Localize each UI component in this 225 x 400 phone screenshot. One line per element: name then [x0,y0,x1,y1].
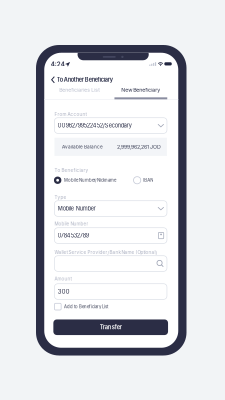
staticText: New Beneficiary [121,87,160,93]
staticText: To Beneficiary [54,167,88,173]
staticText: Amount [54,276,71,281]
staticText: Mobile Number [58,205,96,212]
staticText: Transfer [100,324,122,331]
staticText: 4:24 [51,60,65,68]
staticText: Add to Beneficiary List [64,304,108,309]
staticText: 00962799522452/Secondary [58,122,132,129]
button[interactable]: Transfer [53,319,168,335]
button[interactable]: Mobile Number/Nickname [54,176,120,184]
staticText: 300 [58,288,70,295]
button[interactable]: New Beneficiary [115,85,167,94]
staticText: 0784532789 [58,232,89,239]
staticText: IBAN [143,178,153,183]
staticText: Beneficiaries List [59,87,100,93]
staticText: Available Balance [62,144,103,150]
button[interactable]: Mobile Number [54,201,167,216]
staticText: Mobile Number [54,221,88,226]
button[interactable]: 00962799522452/Secondary [54,118,167,133]
button[interactable]: Add to Beneficiary List [54,303,167,310]
button[interactable]: To Another Beneficiary [51,74,171,85]
staticText: Wallet Service Provider/Bank Name (Optio… [54,249,157,255]
staticText: To Another Beneficiary [57,76,113,83]
staticText: From Account [54,111,86,117]
button[interactable]: IBAN [134,176,160,184]
staticText: Type [54,194,66,200]
button[interactable]: Beneficiaries List [53,85,106,94]
staticText: 2,999,962,261 JOD [117,144,161,150]
staticText: Mobile Number/Nickname [64,178,116,183]
